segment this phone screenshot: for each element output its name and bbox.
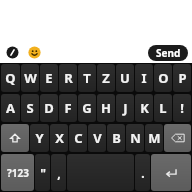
staticText: G [82, 99, 92, 117]
button[interactable]: W [21, 64, 39, 92]
button[interactable]: N [126, 124, 144, 152]
staticText: ?123 [7, 166, 29, 180]
button[interactable]: F [59, 94, 77, 122]
staticText: O [158, 69, 169, 87]
button[interactable]: Shift [1, 124, 29, 152]
staticText: Send [156, 46, 181, 60]
button[interactable]: ! [173, 94, 191, 122]
staticText: X [55, 129, 64, 147]
button[interactable]: Emoji [26, 44, 43, 61]
button[interactable]: Attach [4, 44, 21, 61]
button[interactable]: E [40, 64, 58, 92]
staticText: A [6, 99, 15, 117]
button[interactable]: " [35, 154, 50, 191]
button[interactable]: Send [148, 45, 188, 61]
staticText: K [140, 99, 149, 117]
button[interactable]: Backspace [164, 124, 191, 152]
staticText: , [57, 165, 61, 181]
button[interactable]: V [88, 124, 106, 152]
staticText: D [44, 99, 54, 117]
button[interactable]: U [116, 64, 134, 92]
staticText: F [64, 99, 72, 117]
button[interactable]: Space [67, 154, 134, 191]
staticText: C [74, 129, 83, 147]
staticText: R [64, 69, 73, 87]
staticText: W [24, 69, 37, 87]
button[interactable]: O [154, 64, 172, 92]
staticText: P [178, 69, 187, 87]
button[interactable]: P [173, 64, 191, 92]
button[interactable]: T [78, 64, 96, 92]
button[interactable]: . [135, 154, 150, 191]
staticText: E [45, 69, 53, 87]
staticText: J [123, 99, 128, 117]
button[interactable]: , [51, 154, 66, 191]
staticText: V [93, 129, 102, 147]
button[interactable]: D [40, 94, 58, 122]
staticText: Q [5, 69, 16, 87]
staticText: B [112, 129, 121, 147]
button[interactable]: K [135, 94, 153, 122]
button[interactable]: G [78, 94, 96, 122]
button[interactable]: Q [1, 64, 20, 92]
button[interactable]: R [59, 64, 77, 92]
staticText: T [83, 69, 91, 87]
staticText: " [40, 165, 46, 181]
staticText: I [141, 69, 147, 87]
button[interactable]: L [154, 94, 172, 122]
staticText: N [130, 129, 141, 147]
staticText: L [159, 99, 167, 117]
staticText: H [101, 99, 111, 117]
button[interactable]: I [135, 64, 153, 92]
button[interactable]: ?123 [1, 154, 34, 191]
button[interactable]: Y [30, 124, 49, 152]
staticText: U [120, 69, 130, 87]
staticText: M [148, 129, 161, 147]
button[interactable]: A [1, 94, 20, 122]
staticText: ! [180, 99, 184, 117]
button[interactable]: X [50, 124, 68, 152]
staticText: Z [102, 69, 110, 87]
button[interactable]: H [97, 94, 115, 122]
button[interactable]: S [21, 94, 39, 122]
button[interactable]: Enter [151, 154, 191, 191]
button[interactable]: M [145, 124, 163, 152]
button[interactable]: C [69, 124, 87, 152]
staticText: . [141, 165, 145, 181]
staticText: Y [35, 129, 44, 147]
button[interactable]: J [116, 94, 134, 122]
button[interactable]: Z [97, 64, 115, 92]
button[interactable]: B [107, 124, 125, 152]
staticText: S [26, 99, 34, 117]
